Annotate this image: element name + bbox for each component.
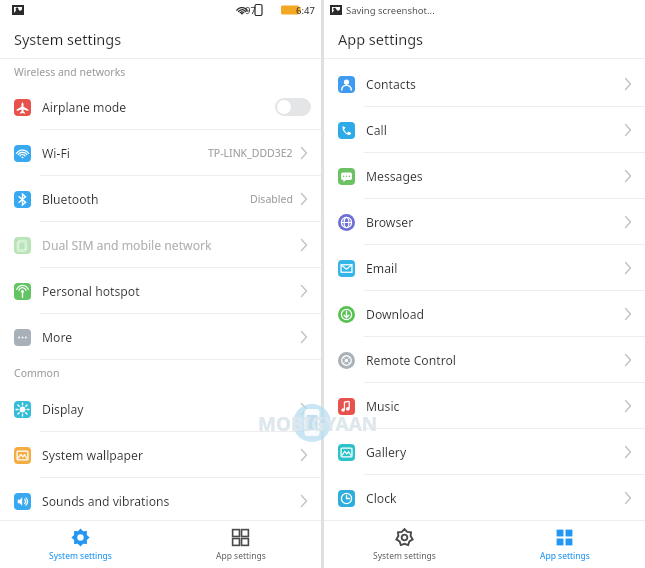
- staticText: Browser: [366, 214, 621, 231]
- staticText: Gallery: [366, 444, 621, 461]
- button[interactable]: Airplane mode: [0, 84, 321, 130]
- button[interactable]: Wi-Fi: [0, 130, 321, 176]
- button[interactable]: Music: [324, 383, 645, 429]
- staticText: System settings: [373, 550, 436, 562]
- staticText: MOBIGYAAN: [258, 411, 378, 437]
- staticText: Clock: [366, 490, 621, 507]
- button[interactable]: Browser: [324, 199, 645, 245]
- button[interactable]: Remote Control: [324, 337, 645, 383]
- button[interactable]: Download: [324, 291, 645, 337]
- button[interactable]: Messages: [324, 153, 645, 199]
- button[interactable]: System wallpaper: [0, 432, 321, 478]
- staticText: Sounds and vibrations: [42, 493, 297, 510]
- staticText: Saving screenshot...: [346, 4, 435, 17]
- staticText: System wallpaper: [42, 447, 297, 464]
- staticText: App settings: [338, 29, 424, 49]
- staticText: Disabled: [250, 192, 293, 206]
- button[interactable]: Contacts: [324, 61, 645, 107]
- staticText: Bluetooth: [42, 191, 250, 208]
- staticText: 6:47: [296, 4, 315, 17]
- staticText: Display: [42, 401, 297, 418]
- staticText: Download: [366, 306, 621, 323]
- button[interactable]: System settings: [0, 521, 160, 568]
- staticText: Contacts: [366, 76, 621, 93]
- button[interactable]: Bluetooth: [0, 176, 321, 222]
- staticText: TP-LINK_DDD3E2: [208, 146, 293, 160]
- button[interactable]: Airplane mode toggle: [275, 98, 311, 116]
- staticText: Personal hotspot: [42, 283, 297, 300]
- staticText: Messages: [366, 168, 621, 185]
- button[interactable]: Sounds and vibrations: [0, 478, 321, 524]
- staticText: Dual SIM and mobile network: [42, 237, 297, 254]
- button[interactable]: Display: [0, 386, 321, 432]
- staticText: Email: [366, 260, 621, 277]
- staticText: App settings: [216, 550, 266, 562]
- staticText: Wi-Fi: [42, 145, 208, 162]
- button[interactable]: Call: [324, 107, 645, 153]
- staticText: More: [42, 329, 297, 346]
- button[interactable]: App settings: [160, 521, 321, 568]
- button[interactable]: Dual SIM and mobile network: [0, 222, 321, 268]
- button[interactable]: Email: [324, 245, 645, 291]
- staticText: Common: [14, 366, 60, 380]
- staticText: Wireless and networks: [14, 65, 126, 79]
- staticText: Call: [366, 122, 621, 139]
- button[interactable]: Gallery: [324, 429, 645, 475]
- button[interactable]: App settings: [484, 521, 645, 568]
- staticText: Airplane mode: [42, 99, 275, 116]
- button[interactable]: Personal hotspot: [0, 268, 321, 314]
- button[interactable]: System settings: [324, 521, 484, 568]
- button[interactable]: Clock: [324, 475, 645, 521]
- staticText: System settings: [49, 550, 112, 562]
- staticText: System settings: [14, 29, 122, 49]
- button[interactable]: More: [0, 314, 321, 360]
- staticText: Remote Control: [366, 352, 621, 369]
- staticText: Music: [366, 398, 621, 415]
- staticText: App settings: [540, 550, 590, 562]
- staticText: 97: [245, 4, 256, 17]
